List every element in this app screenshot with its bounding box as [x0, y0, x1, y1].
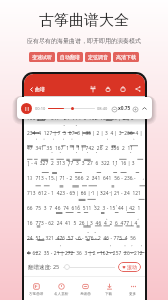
staticText: 下载	[105, 292, 113, 297]
staticText: 考级曲	[80, 292, 91, 297]
staticText: 471 | 15 4 - 474 4 - 675 - 5 43 - 133 57…	[27, 100, 143, 107]
button[interactable]: Share	[134, 85, 142, 93]
staticText: 4 622 35 - 21 | 272 36 3 | 2 - 162 - 257…	[27, 250, 143, 257]
button[interactable]: 名人赏析	[49, 277, 73, 300]
button[interactable]: Back	[27, 85, 35, 93]
button[interactable]: 变速试听	[29, 52, 55, 62]
button[interactable]: 滚动	[118, 262, 141, 272]
staticText: 1 - 4 327 2 313 77 3 3 27 6 322 11 16 | …	[27, 160, 143, 167]
staticText: 08:40	[97, 106, 108, 111]
button[interactable]: Collapse	[141, 105, 148, 112]
staticText: 古筝曲谱	[29, 292, 44, 297]
staticText: 00:10	[35, 106, 46, 111]
staticText: 变速试听	[32, 54, 52, 60]
staticText: 47 341 35 167 1 1 1 | 742 26 2 356 2 11 …	[27, 145, 143, 152]
staticText: 更多	[129, 292, 137, 297]
button[interactable]: Speed slider	[64, 264, 70, 270]
button[interactable]: Tuner	[89, 85, 97, 93]
staticText: 名人赏析	[54, 292, 69, 297]
staticText: x0.75	[118, 105, 131, 112]
button[interactable]: Slower	[111, 106, 117, 112]
button[interactable]: Favorite	[119, 85, 127, 93]
button[interactable]: 定弦调音	[85, 52, 111, 62]
button[interactable]: Faster	[132, 106, 138, 112]
staticText: 11 713 - 15 | 71 - 2 566 2 341 641 56 - …	[27, 175, 143, 182]
staticText: 滚动	[127, 264, 137, 270]
staticText: 756 | 15 - 547 - 21 714 6 762 764 65 | 6…	[27, 115, 143, 122]
staticText: 定弦调音	[88, 54, 108, 60]
button[interactable]: Pause	[21, 103, 32, 114]
button[interactable]: Lock	[104, 85, 112, 93]
button[interactable]: 自动翻谱	[57, 52, 83, 62]
staticText: 66 75 3 7 46 74 616 511 32 3 - 15 44 | 4…	[27, 205, 143, 212]
button[interactable]: 下载	[97, 277, 121, 300]
staticText: 713 612 - 1 423 - 65 | 66 | 1 | 324 | 21…	[27, 190, 143, 197]
staticText: 234 4 127 | 7 5 67 3 | 35 | 2 | 3 4 | 3 …	[27, 130, 143, 137]
staticText: 应有尽有的海量曲谱，即开即用的演奏模式	[0, 37, 168, 45]
staticText: 24 51 - 321 476 57 - 6 - 576 - 2 46 - 77…	[27, 235, 143, 242]
button[interactable]: 更多	[121, 277, 145, 300]
staticText: 高清下载	[116, 54, 136, 60]
staticText: 曲谱	[35, 86, 45, 92]
button[interactable]: Pause	[17, 97, 152, 119]
staticText: 翻谱速度: 25	[28, 263, 60, 271]
button[interactable]: 高清下载	[113, 52, 139, 62]
button[interactable]: 考级曲	[73, 277, 97, 300]
staticText: 自动翻谱	[60, 54, 80, 60]
staticText: 16 773 - 62 24 41 5 26 | 3 46 4 2 6 477 …	[27, 220, 143, 227]
button[interactable]: 古筝曲谱	[24, 277, 49, 300]
staticText: 古筝曲谱大全	[0, 11, 168, 30]
